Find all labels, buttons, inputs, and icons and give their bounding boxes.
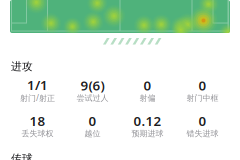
staticText: 射偏 <box>139 93 155 103</box>
staticText: 18 <box>29 112 45 130</box>
staticText: 0 <box>88 112 96 130</box>
staticText: 进攻 <box>11 60 33 73</box>
staticText: 尝试过人 <box>76 93 108 103</box>
staticText: 0 <box>143 76 151 94</box>
staticText: 传球 <box>11 152 33 160</box>
staticText: 0 <box>198 112 206 130</box>
staticText: 错失进球 <box>186 129 218 138</box>
staticText: 射门/射正 <box>20 93 55 103</box>
staticText: 越位 <box>84 129 100 138</box>
staticText: 射门中框 <box>186 93 218 103</box>
staticText: 丢失球权 <box>21 129 53 138</box>
staticText: 9(6) <box>80 76 104 94</box>
staticText: 1/1 <box>27 76 48 94</box>
staticText: 预期进球 <box>131 129 163 138</box>
staticText: 0.12 <box>133 112 161 130</box>
staticText: 0 <box>198 76 206 94</box>
